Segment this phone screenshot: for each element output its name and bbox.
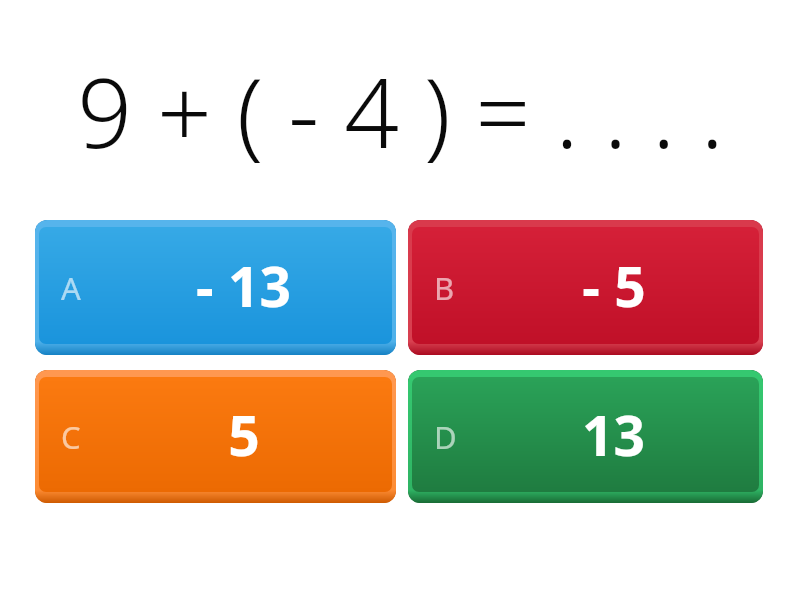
button[interactable]: D: [408, 370, 763, 503]
staticText: - 5: [582, 248, 646, 323]
button[interactable]: C: [35, 370, 396, 503]
staticText: 5: [228, 397, 260, 472]
staticText: 9 + ( - 4 ) = . . . .: [77, 45, 724, 176]
staticText: 13: [582, 397, 645, 472]
staticText: C: [61, 416, 81, 458]
staticText: D: [434, 416, 457, 458]
staticText: - 13: [196, 248, 291, 323]
staticText: B: [434, 267, 455, 309]
staticText: A: [61, 267, 81, 309]
button[interactable]: A: [35, 220, 396, 355]
button[interactable]: B: [408, 220, 763, 355]
